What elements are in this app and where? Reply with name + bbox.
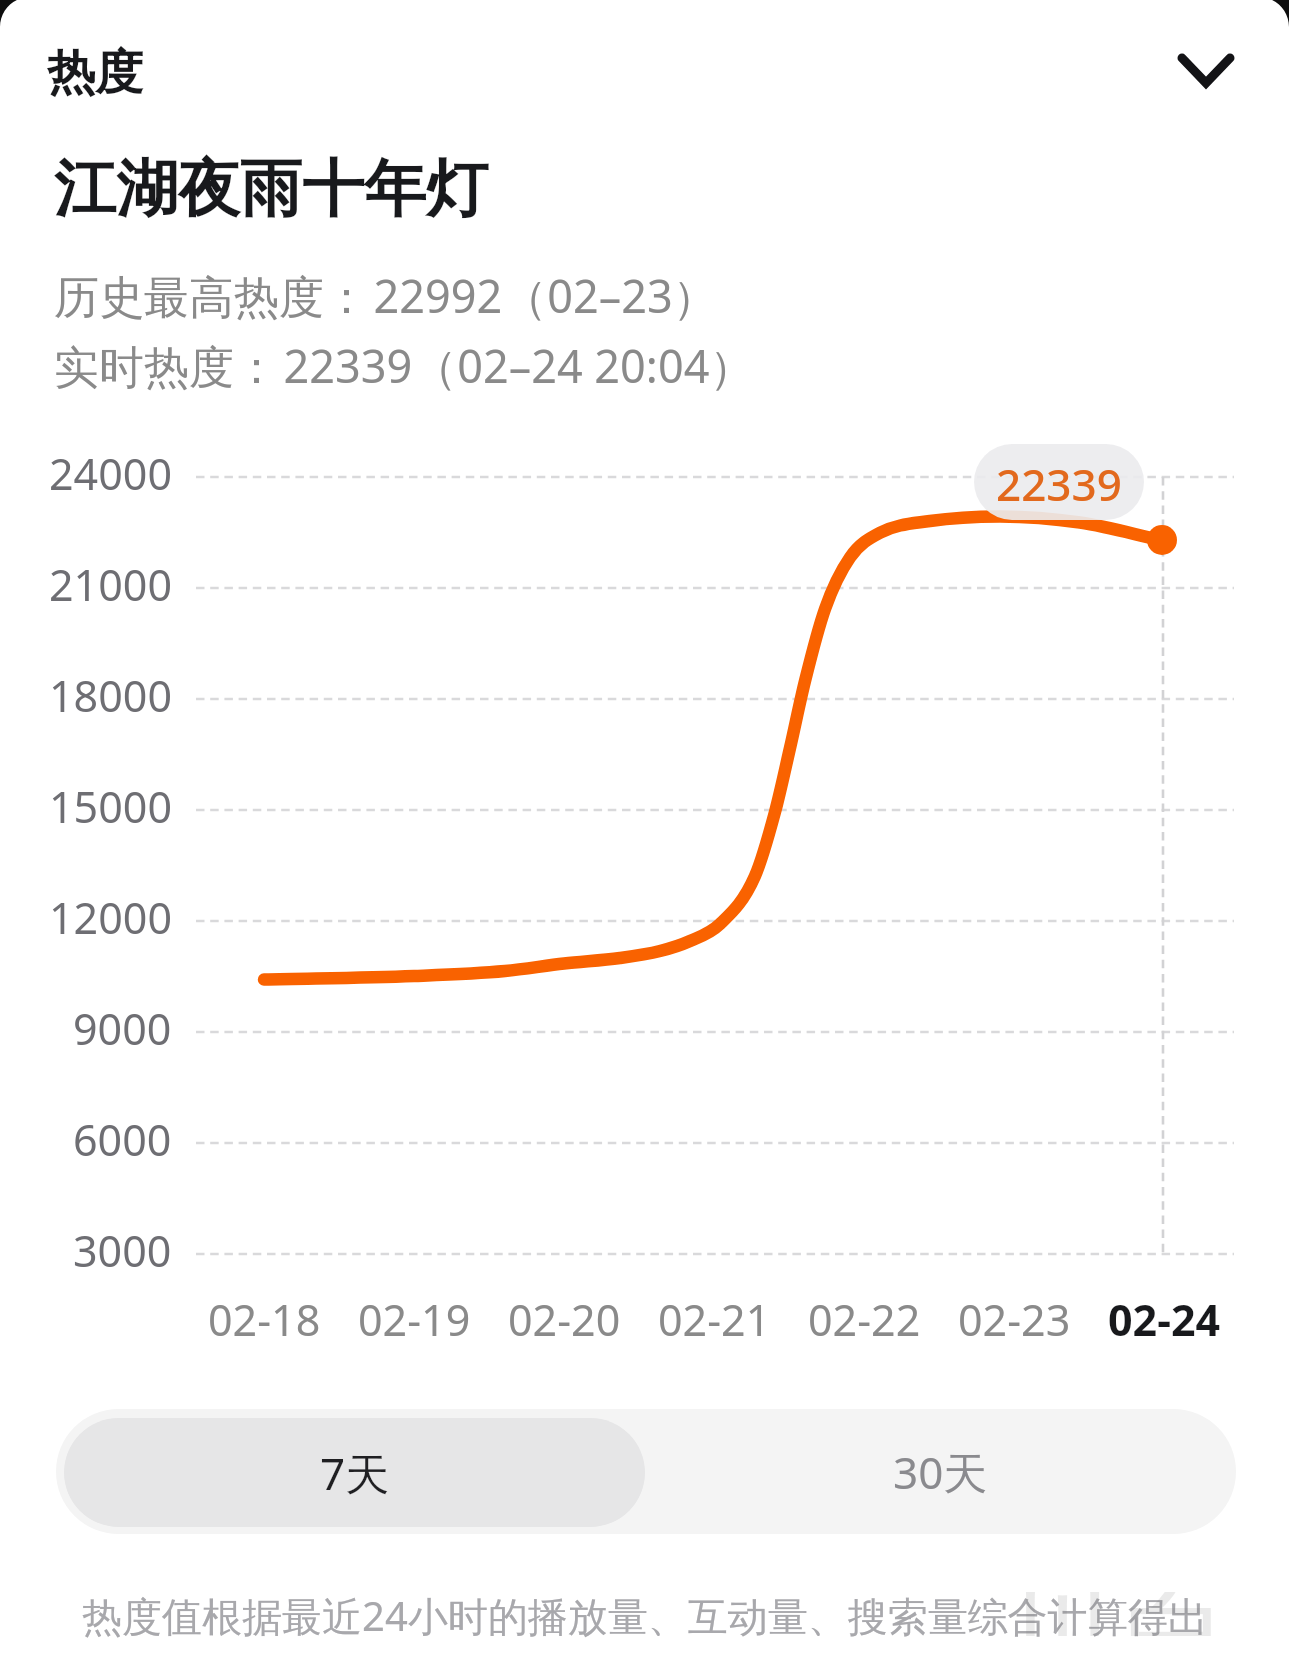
staticText: 江湖夜雨十年灯 <box>54 150 488 228</box>
staticText: 02-18 <box>208 1290 321 1349</box>
staticText: 02-23 <box>958 1290 1071 1349</box>
staticText: 川自己 <box>1000 1592 1262 1636</box>
staticText: 21000 <box>49 555 172 614</box>
staticText: 3000 <box>73 1221 172 1280</box>
staticText: 02-20 <box>508 1290 621 1349</box>
staticText: 历史最高热度： 22992（02–23） <box>54 265 718 326</box>
staticText: 02-24 <box>1108 1290 1221 1349</box>
staticText: 15000 <box>49 777 172 836</box>
staticText: 30天 <box>893 1442 988 1502</box>
button[interactable]: 7天 <box>64 1418 645 1527</box>
staticText: 12000 <box>49 888 172 947</box>
staticText: 实时热度： 22339（02–24 20:04） <box>54 335 755 396</box>
staticText: 02-19 <box>358 1290 471 1349</box>
staticText: 6000 <box>73 1110 172 1169</box>
staticText: 18000 <box>49 666 172 725</box>
staticText: 7天 <box>320 1443 390 1503</box>
staticText: 9000 <box>73 999 172 1058</box>
staticText: 02-21 <box>658 1290 771 1349</box>
button[interactable]: 30天 <box>645 1409 1236 1534</box>
button[interactable]: Collapse <box>1158 22 1254 118</box>
staticText: 热度 <box>47 43 143 103</box>
staticText: 热度值根据最近24小时的播放量、互动量、搜索量综合计算得出 <box>82 1588 1208 1643</box>
staticText: 24000 <box>49 444 172 503</box>
staticText: 22339 <box>996 454 1122 514</box>
staticText: 02-22 <box>808 1290 921 1349</box>
